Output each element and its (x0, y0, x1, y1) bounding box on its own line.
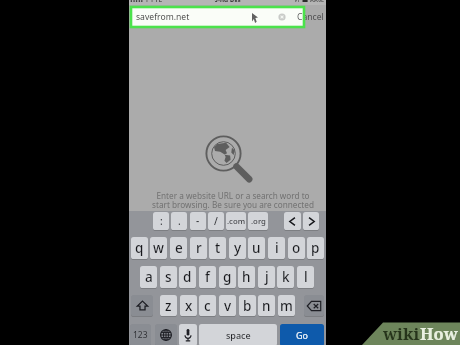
button[interactable]: o (288, 237, 305, 259)
staticText: ↻ ■ 66% (294, 0, 325, 2)
button[interactable]: d (179, 266, 196, 288)
button[interactable]: Backspace (304, 295, 324, 316)
button[interactable]: Clear text (278, 13, 286, 21)
button[interactable]: Go (280, 324, 324, 345)
staticText: k (282, 268, 290, 286)
staticText: x (185, 297, 193, 315)
staticText: .com (227, 216, 246, 227)
staticText: j (265, 268, 269, 286)
staticText: m (280, 297, 293, 315)
button[interactable]: n (258, 295, 275, 316)
button[interactable]: u (248, 237, 265, 259)
button[interactable]: w (150, 237, 167, 259)
button[interactable]: / (208, 212, 224, 230)
staticText: o (292, 239, 301, 257)
button[interactable]: .org (248, 212, 268, 230)
button[interactable]: k (277, 266, 294, 288)
staticText: a (145, 268, 153, 286)
button[interactable]: m (278, 295, 295, 316)
button[interactable]: - (190, 212, 206, 230)
staticText: savefrom.net (136, 11, 190, 23)
button[interactable]: Previous field (284, 212, 301, 230)
staticText: z (165, 297, 172, 315)
button[interactable]: t (209, 237, 226, 259)
staticText: f (205, 268, 210, 286)
button[interactable]: z (160, 295, 177, 316)
staticText: t (215, 239, 221, 257)
button[interactable]: Next field (303, 212, 319, 230)
staticText: - (196, 214, 200, 228)
staticText: l (304, 268, 308, 286)
staticText: w (153, 239, 164, 257)
button[interactable]: y (229, 237, 246, 259)
staticText: / (214, 214, 218, 228)
staticText: b (243, 297, 252, 315)
staticText: v (224, 297, 232, 315)
button[interactable]: a (140, 266, 157, 288)
button[interactable]: x (180, 295, 197, 316)
staticText: space (226, 329, 251, 341)
button[interactable]: i (268, 237, 285, 259)
staticText: e (175, 239, 183, 257)
button[interactable]: s (160, 266, 177, 288)
staticText: 3:09 PM (214, 0, 241, 2)
button[interactable]: 123 (130, 324, 151, 345)
button[interactable]: p (307, 237, 324, 259)
button[interactable]: h (238, 266, 255, 288)
staticText: p (311, 239, 320, 257)
staticText: c (204, 297, 211, 315)
button[interactable]: savefrom.net (132, 8, 303, 26)
button[interactable]: b (239, 295, 256, 316)
staticText: ••••• T-LTE (130, 0, 163, 2)
staticText: s (165, 268, 172, 286)
button[interactable]: e (170, 237, 187, 259)
staticText: : (160, 214, 163, 228)
staticText: .org (251, 216, 266, 227)
button[interactable]: . (171, 212, 187, 230)
button[interactable]: g (219, 266, 236, 288)
staticText: wiki (383, 322, 420, 344)
button[interactable]: Switch keyboard language (155, 324, 177, 345)
button[interactable]: j (258, 266, 275, 288)
button[interactable]: v (219, 295, 236, 316)
staticText: 123 (133, 329, 148, 341)
staticText: y (234, 239, 242, 257)
button[interactable]: r (190, 237, 207, 259)
staticText: Enter a website URL or a search word to … (144, 190, 322, 211)
button[interactable]: .com (226, 212, 246, 230)
button[interactable]: Cancel (297, 11, 324, 23)
staticText: u (252, 239, 261, 257)
staticText: How (420, 322, 458, 344)
staticText: n (262, 297, 271, 315)
staticText: . (178, 214, 181, 228)
button[interactable]: space (199, 324, 277, 345)
staticText: Go (296, 329, 308, 341)
staticText: q (135, 239, 144, 257)
button[interactable]: Shift (131, 295, 153, 316)
button[interactable]: f (199, 266, 216, 288)
staticText: h (242, 268, 251, 286)
staticText: g (223, 268, 232, 286)
button[interactable]: Voice input (179, 324, 197, 345)
staticText: i (275, 239, 279, 257)
button[interactable]: : (153, 212, 169, 230)
staticText: r (196, 239, 202, 257)
button[interactable]: c (199, 295, 216, 316)
staticText: d (183, 268, 192, 286)
button[interactable]: q (131, 237, 148, 259)
button[interactable]: l (297, 266, 314, 288)
